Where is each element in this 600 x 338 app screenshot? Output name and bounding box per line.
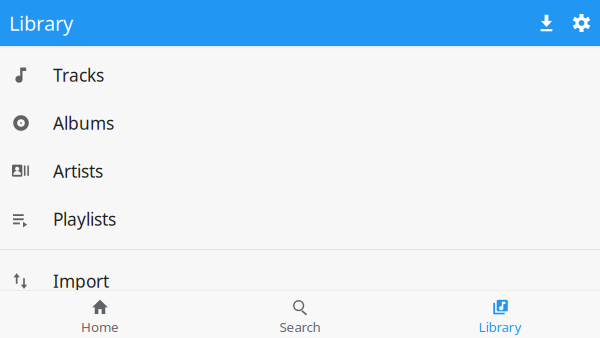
staticText: Artists [53, 159, 103, 182]
staticText: Import [53, 269, 109, 292]
button[interactable]: Playlists [0, 195, 600, 243]
button[interactable]: Library [400, 291, 600, 338]
staticText: Playlists [53, 207, 116, 230]
button[interactable]: Tracks [0, 51, 600, 99]
button[interactable]: Settings [564, 0, 599, 46]
staticText: Library [9, 10, 73, 36]
button[interactable]: Import [0, 257, 600, 305]
staticText: Search [279, 318, 320, 336]
button[interactable]: Home [0, 291, 200, 338]
staticText: Library [478, 318, 521, 336]
staticText: Albums [53, 111, 114, 134]
staticText: Home [81, 318, 119, 336]
button[interactable]: Albums [0, 99, 600, 147]
button[interactable]: Artists [0, 147, 600, 195]
staticText: Tracks [53, 63, 104, 86]
button[interactable]: Download [529, 0, 564, 46]
button[interactable]: Search [200, 291, 400, 338]
